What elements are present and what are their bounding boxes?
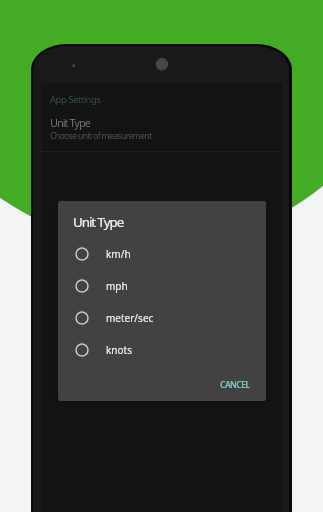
staticText: CANCEL (220, 379, 250, 391)
button[interactable]: meter/sec (58, 302, 266, 334)
button[interactable]: mph (58, 270, 266, 302)
staticText: meter/sec (106, 311, 154, 325)
staticText: App Settings (50, 93, 101, 106)
button[interactable]: App Settings (41, 83, 282, 110)
button[interactable]: knots (58, 334, 266, 366)
staticText: mph (106, 279, 128, 293)
staticText: knots (106, 343, 132, 357)
button[interactable]: Unit Type (41, 110, 282, 151)
staticText: km/h (106, 247, 131, 261)
staticText: Unit Type (50, 115, 90, 130)
button[interactable]: CANCEL (204, 374, 266, 396)
staticText: Choose unit of measurement (50, 130, 152, 142)
staticText: Unit Type (73, 213, 124, 231)
button[interactable]: km/h (58, 238, 266, 270)
